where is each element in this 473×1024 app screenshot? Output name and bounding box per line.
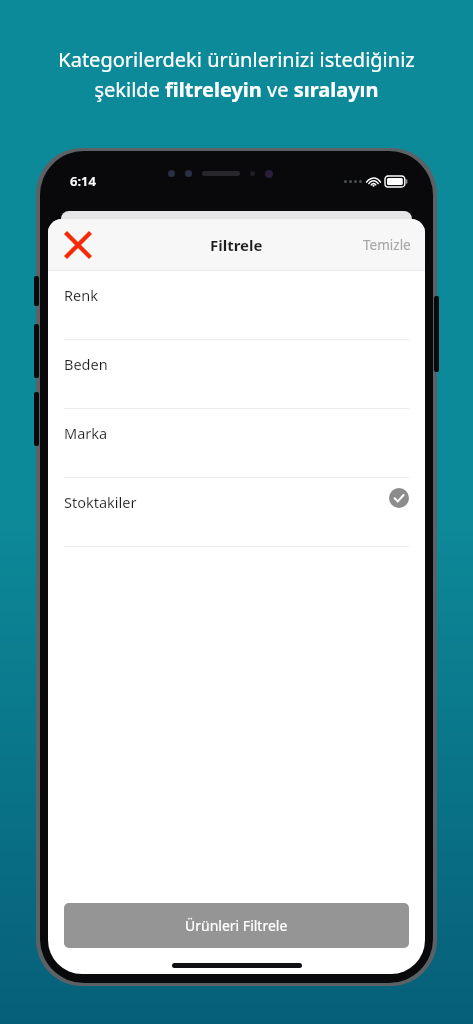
- button[interactable]: Kapat: [56, 223, 100, 267]
- staticText: Ürünleri Filtrele: [185, 916, 288, 935]
- staticText: Stoktakiler: [64, 492, 137, 512]
- staticText: Kategorilerdeki ürünlerinizi istediğiniz…: [28, 46, 445, 103]
- button[interactable]: Ürünleri Filtrele: [64, 903, 409, 948]
- staticText: Marka: [64, 423, 108, 443]
- staticText: Beden: [64, 354, 108, 374]
- staticText: Filtrele: [210, 235, 263, 255]
- button[interactable]: Renk: [48, 271, 425, 340]
- button[interactable]: Beden: [48, 340, 425, 409]
- staticText: Renk: [64, 285, 98, 305]
- button[interactable]: Marka: [48, 409, 425, 478]
- staticText: 6:14: [70, 172, 96, 190]
- button[interactable]: Temizle: [349, 224, 425, 266]
- button[interactable]: Stoktakiler: [48, 478, 425, 547]
- staticText: Temizle: [363, 236, 411, 254]
